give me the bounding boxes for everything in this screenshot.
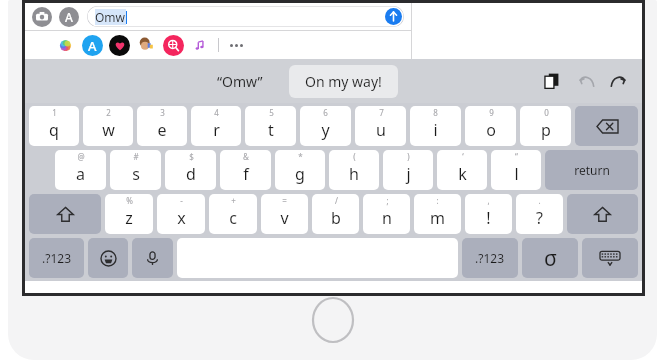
- staticText: f: [243, 163, 249, 185]
- staticText: n: [382, 207, 392, 229]
- button[interactable]: :: [414, 194, 461, 234]
- button[interactable]: Numbers: [462, 238, 518, 278]
- button[interactable]: (: [329, 150, 379, 190]
- button[interactable]: return: [545, 150, 638, 190]
- button[interactable]: Memoji: [136, 35, 157, 56]
- button[interactable]: Images: [163, 35, 184, 56]
- button[interactable]: 2: [83, 106, 133, 146]
- staticText: p: [541, 119, 551, 141]
- staticText: e: [157, 119, 167, 141]
- staticText: ?: [536, 207, 543, 229]
- button[interactable]: =: [261, 194, 308, 234]
- staticText: i: [433, 119, 438, 141]
- button[interactable]: “: [491, 150, 541, 190]
- button[interactable]: On my way!: [289, 65, 398, 98]
- staticText: 0: [544, 107, 549, 118]
- staticText: d: [186, 163, 196, 185]
- button[interactable]: Hide keyboard: [582, 238, 638, 278]
- button[interactable]: &: [220, 150, 271, 190]
- button[interactable]: Digital Touch: [109, 35, 130, 56]
- button[interactable]: ,: [465, 194, 512, 234]
- button[interactable]: App Store: [59, 7, 79, 27]
- staticText: @: [77, 151, 85, 162]
- staticText: q: [49, 119, 59, 141]
- staticText: 6: [323, 107, 328, 118]
- button[interactable]: 6: [300, 106, 351, 146]
- button[interactable]: 8: [410, 106, 461, 146]
- staticText: σ: [544, 244, 557, 273]
- button[interactable]: Emoji: [88, 238, 128, 278]
- button[interactable]: 5: [245, 106, 296, 146]
- staticText: ,: [487, 195, 490, 206]
- staticText: ‘: [462, 151, 464, 162]
- button[interactable]: App Store: [82, 35, 103, 56]
- button[interactable]: Photos: [55, 35, 76, 56]
- staticText: “Omw”: [217, 72, 263, 91]
- staticText: o: [486, 119, 496, 141]
- button[interactable]: ;: [363, 194, 410, 234]
- staticText: =: [282, 195, 287, 206]
- staticText: 8: [433, 107, 438, 118]
- staticText: v: [280, 207, 289, 229]
- staticText: !: [486, 207, 491, 229]
- button[interactable]: $: [165, 150, 216, 190]
- button[interactable]: Numbers: [29, 238, 84, 278]
- staticText: m: [430, 207, 445, 229]
- button[interactable]: Camera: [32, 7, 52, 27]
- button[interactable]: Redo: [604, 67, 632, 95]
- staticText: .: [538, 195, 541, 206]
- button[interactable]: @: [55, 150, 106, 190]
- button[interactable]: %: [105, 194, 153, 234]
- button[interactable]: *: [275, 150, 325, 190]
- staticText: A: [88, 37, 97, 55]
- button[interactable]: Omw: [87, 6, 404, 27]
- button[interactable]: -: [157, 194, 205, 234]
- staticText: 7: [379, 107, 384, 118]
- staticText: “: [515, 151, 518, 162]
- staticText: z: [125, 207, 133, 229]
- button[interactable]: Handwriting: [522, 238, 578, 278]
- staticText: .?123: [475, 250, 505, 266]
- button[interactable]: 9: [465, 106, 516, 146]
- button[interactable]: 3: [137, 106, 187, 146]
- button[interactable]: Backspace: [575, 106, 638, 146]
- staticText: %: [126, 195, 133, 206]
- staticText: ;: [386, 195, 389, 206]
- button[interactable]: +: [209, 194, 257, 234]
- button[interactable]: ‘: [437, 150, 487, 190]
- staticText: x: [177, 207, 186, 229]
- button[interactable]: Shift: [567, 194, 638, 234]
- staticText: &: [243, 151, 249, 162]
- staticText: return: [574, 162, 610, 178]
- button[interactable]: 7: [355, 106, 406, 146]
- staticText: t: [268, 119, 274, 141]
- staticText: 1: [52, 107, 57, 118]
- button[interactable]: /: [312, 194, 359, 234]
- staticText: c: [229, 207, 237, 229]
- button[interactable]: Dictate: [132, 238, 173, 278]
- staticText: r: [213, 119, 220, 141]
- staticText: *: [298, 151, 303, 162]
- button[interactable]: Shift: [29, 194, 101, 234]
- button[interactable]: Undo: [572, 67, 600, 95]
- button[interactable]: Send: [385, 8, 402, 25]
- button[interactable]: ): [383, 150, 433, 190]
- button[interactable]: Paste: [538, 67, 566, 95]
- button[interactable]: “Omw”: [211, 66, 269, 97]
- staticText: b: [331, 207, 341, 229]
- button[interactable]: 1: [29, 106, 79, 146]
- staticText: j: [406, 163, 411, 185]
- button[interactable]: .: [516, 194, 563, 234]
- staticText: :: [436, 195, 439, 206]
- button[interactable]: Music: [190, 35, 211, 56]
- button[interactable]: More apps: [226, 35, 247, 56]
- staticText: 4: [214, 107, 219, 118]
- button[interactable]: 0: [520, 106, 571, 146]
- staticText: a: [76, 163, 85, 185]
- staticText: h: [349, 163, 359, 185]
- staticText: 2: [106, 107, 111, 118]
- staticText: 5: [269, 107, 274, 118]
- button[interactable]: 4: [191, 106, 241, 146]
- button[interactable]: #: [110, 150, 161, 190]
